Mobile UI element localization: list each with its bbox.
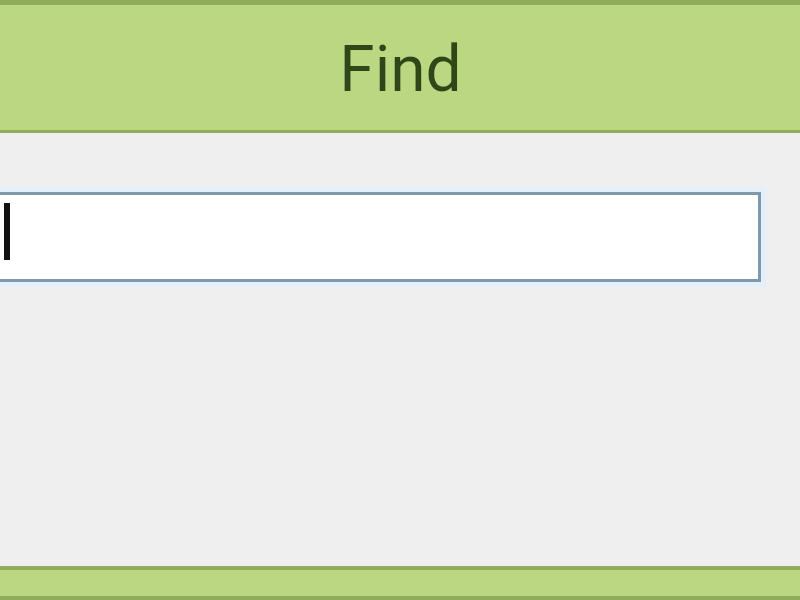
button[interactable]: Find bbox=[0, 0, 800, 133]
button[interactable]: Search field bbox=[0, 187, 800, 287]
staticText: Find bbox=[339, 32, 462, 107]
button[interactable]: Bottom bar bbox=[0, 566, 800, 600]
